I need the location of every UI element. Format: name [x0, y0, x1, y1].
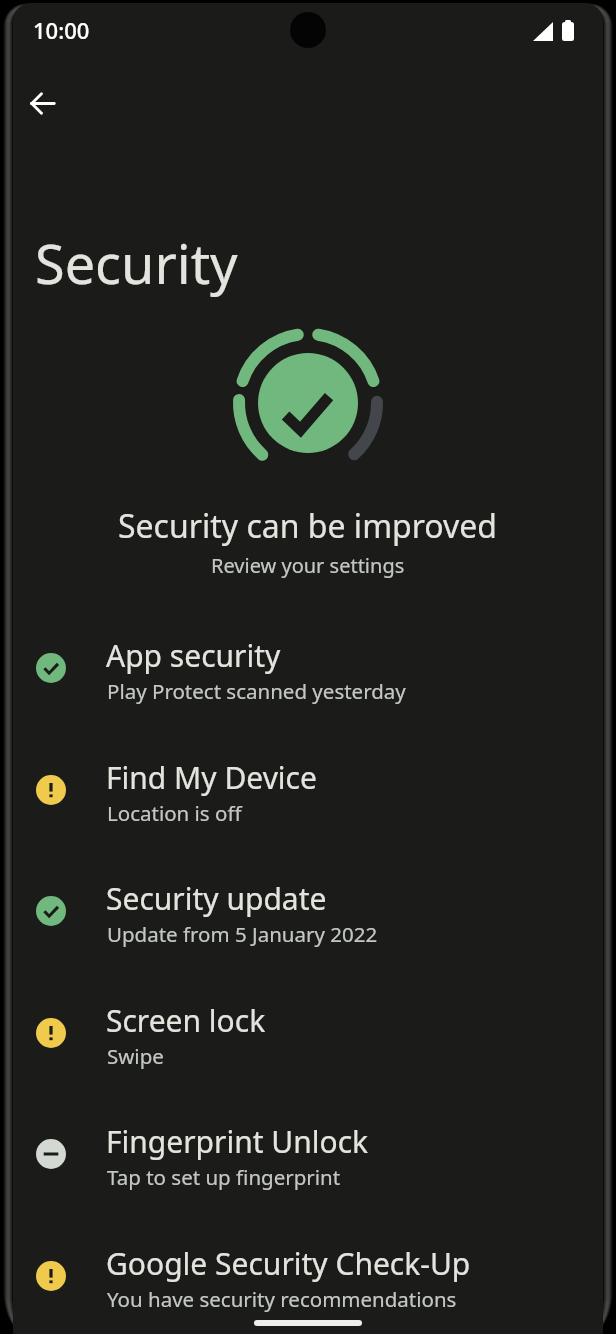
staticText: Fingerprint Unlock	[106, 1121, 369, 1162]
staticText: Swipe	[107, 1042, 164, 1070]
staticText: Play Protect scanned yesterday	[107, 677, 406, 705]
staticText: Security can be improved	[118, 504, 498, 548]
staticText: Security	[35, 226, 238, 300]
button[interactable]: Google Security Check-Up	[0, 1236, 616, 1334]
staticText: Screen lock	[106, 1000, 266, 1041]
staticText: You have security recommendations	[107, 1285, 457, 1313]
staticText: Review your settings	[211, 552, 405, 579]
button[interactable]: Security update	[0, 871, 616, 989]
button[interactable]: Back	[17, 78, 67, 128]
staticText: App security	[106, 635, 281, 676]
staticText: Google Security Check-Up	[106, 1243, 471, 1284]
staticText: Tap to set up fingerprint	[107, 1163, 341, 1191]
button[interactable]: Find My Device	[0, 750, 616, 868]
button[interactable]: App security	[0, 628, 616, 746]
staticText: Location is off	[107, 799, 242, 827]
button[interactable]: Screen lock	[0, 993, 616, 1111]
staticText: Update from 5 January 2022	[107, 920, 378, 948]
staticText: Find My Device	[106, 757, 317, 798]
button[interactable]: Fingerprint Unlock	[0, 1114, 616, 1232]
staticText: 10:00	[33, 15, 90, 45]
staticText: Security update	[106, 878, 327, 919]
